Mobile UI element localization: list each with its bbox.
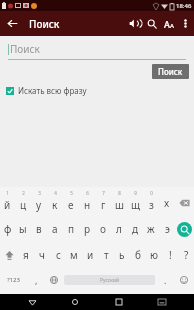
button[interactable]: ф	[0, 216, 15, 242]
button[interactable]: 9	[127, 190, 143, 216]
button[interactable]: п	[63, 216, 79, 242]
staticText: Русский	[100, 277, 120, 284]
button[interactable]: б	[130, 242, 146, 268]
staticText: Поиск	[29, 17, 60, 31]
staticText: г	[101, 198, 106, 212]
staticText: A	[164, 18, 170, 30]
button[interactable]: Поиск	[152, 64, 189, 79]
button[interactable]: х	[159, 190, 175, 216]
button[interactable]: 0	[143, 190, 159, 216]
button[interactable]: 2	[15, 190, 31, 216]
button[interactable]: 4	[47, 190, 63, 216]
staticText: ю	[150, 248, 158, 262]
staticText: A	[170, 22, 174, 30]
staticText: Поиск	[158, 66, 183, 77]
button[interactable]: 5	[63, 190, 79, 216]
staticText: м	[70, 248, 78, 262]
staticText: ч	[39, 248, 45, 262]
staticText: ы	[19, 222, 27, 236]
button[interactable]: м	[66, 242, 82, 268]
staticText: 1	[6, 190, 9, 196]
staticText: 3	[38, 190, 41, 196]
button[interactable]: Home	[64, 294, 86, 310]
button[interactable]: Back	[21, 294, 43, 310]
staticText: э	[165, 222, 170, 236]
button[interactable]: Recent apps	[108, 294, 130, 310]
button[interactable]: Search	[175, 216, 194, 242]
staticText: л	[116, 222, 122, 236]
staticText: Поиск	[10, 42, 40, 56]
button[interactable]: .	[156, 268, 174, 292]
staticText: ц	[20, 198, 27, 212]
staticText: ж	[147, 222, 155, 236]
button[interactable]: с	[50, 242, 66, 268]
staticText: ?123	[7, 276, 20, 284]
button[interactable]: ж	[143, 216, 159, 242]
button[interactable]: о	[95, 216, 111, 242]
button[interactable]: л	[111, 216, 127, 242]
staticText: 6	[86, 190, 89, 196]
button[interactable]: т	[98, 242, 114, 268]
staticText: т	[104, 248, 109, 262]
button[interactable]: я	[18, 242, 34, 268]
button[interactable]: Искать всю фразу	[0, 84, 93, 97]
staticText: 7	[102, 190, 105, 196]
button[interactable]: Emoji	[174, 268, 194, 292]
button[interactable]: в	[31, 216, 47, 242]
staticText: в	[36, 222, 42, 236]
button[interactable]: Symbols	[0, 268, 27, 292]
button[interactable]: ч	[34, 242, 50, 268]
staticText: 2	[22, 190, 25, 196]
staticText: щ	[131, 198, 140, 212]
button[interactable]: ?	[178, 242, 194, 268]
button[interactable]: Back	[0, 11, 25, 36]
button[interactable]: Keyboard	[151, 294, 173, 310]
staticText: !	[169, 248, 172, 262]
button[interactable]: ы	[15, 216, 31, 242]
button[interactable]: Backspace	[175, 190, 194, 216]
button[interactable]: Change language	[45, 268, 63, 292]
staticText: х	[164, 196, 170, 210]
staticText: 0	[150, 190, 153, 196]
staticText: 8	[118, 190, 121, 196]
staticText: ш	[115, 198, 124, 212]
button[interactable]: и	[82, 242, 98, 268]
staticText: а	[52, 222, 58, 236]
button[interactable]: ,	[27, 268, 45, 292]
button[interactable]: Font size	[160, 11, 177, 36]
button[interactable]: Space	[64, 275, 155, 285]
staticText: н	[84, 198, 91, 212]
staticText: я	[23, 248, 29, 262]
staticText: Искать всю фразу	[18, 85, 87, 96]
staticText: .	[164, 274, 167, 286]
button[interactable]: 7	[95, 190, 111, 216]
button[interactable]: 6	[79, 190, 95, 216]
button[interactable]: More options	[177, 11, 194, 36]
staticText: й	[4, 198, 11, 212]
staticText: б	[135, 248, 141, 262]
button[interactable]: ь	[114, 242, 130, 268]
button[interactable]: а	[47, 216, 63, 242]
button[interactable]: р	[79, 216, 95, 242]
staticText: у	[36, 198, 42, 212]
button[interactable]: Volume	[126, 11, 143, 36]
staticText: 4	[54, 190, 57, 196]
staticText: ,	[35, 274, 38, 286]
staticText: ф	[4, 222, 12, 236]
button[interactable]: Shift	[0, 242, 18, 268]
staticText: 9	[134, 190, 137, 196]
staticText: з	[149, 198, 154, 212]
button[interactable]: ю	[146, 242, 162, 268]
button[interactable]: !	[162, 242, 178, 268]
button[interactable]: 3	[31, 190, 47, 216]
button[interactable]: э	[159, 216, 175, 242]
staticText: д	[132, 222, 139, 236]
staticText: с	[56, 248, 61, 262]
button[interactable]: 1	[0, 190, 15, 216]
staticText: 5	[70, 190, 73, 196]
button[interactable]: Search	[143, 11, 160, 36]
staticText: 18:46	[176, 2, 192, 10]
staticText: и	[87, 248, 94, 262]
button[interactable]: д	[127, 216, 143, 242]
button[interactable]: 8	[111, 190, 127, 216]
